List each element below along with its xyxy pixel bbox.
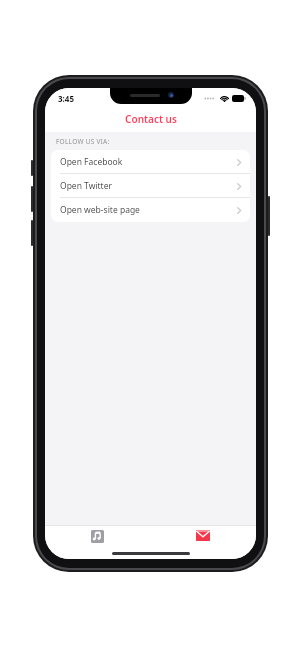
staticText: 3:45 [58,93,74,104]
staticText: Open Twitter [60,180,112,192]
staticText: Open Facebook [60,156,123,168]
button[interactable]: Open Twitter [51,174,250,198]
staticText: Contact us [125,112,177,126]
button[interactable]: Music [45,525,150,559]
button[interactable]: Contact us [150,525,256,559]
staticText: FOLLOW US VIA: [56,137,110,146]
button[interactable]: Open Facebook [51,150,250,174]
button[interactable]: Open web-site page [51,198,250,222]
staticText: Open web-site page [60,204,140,216]
